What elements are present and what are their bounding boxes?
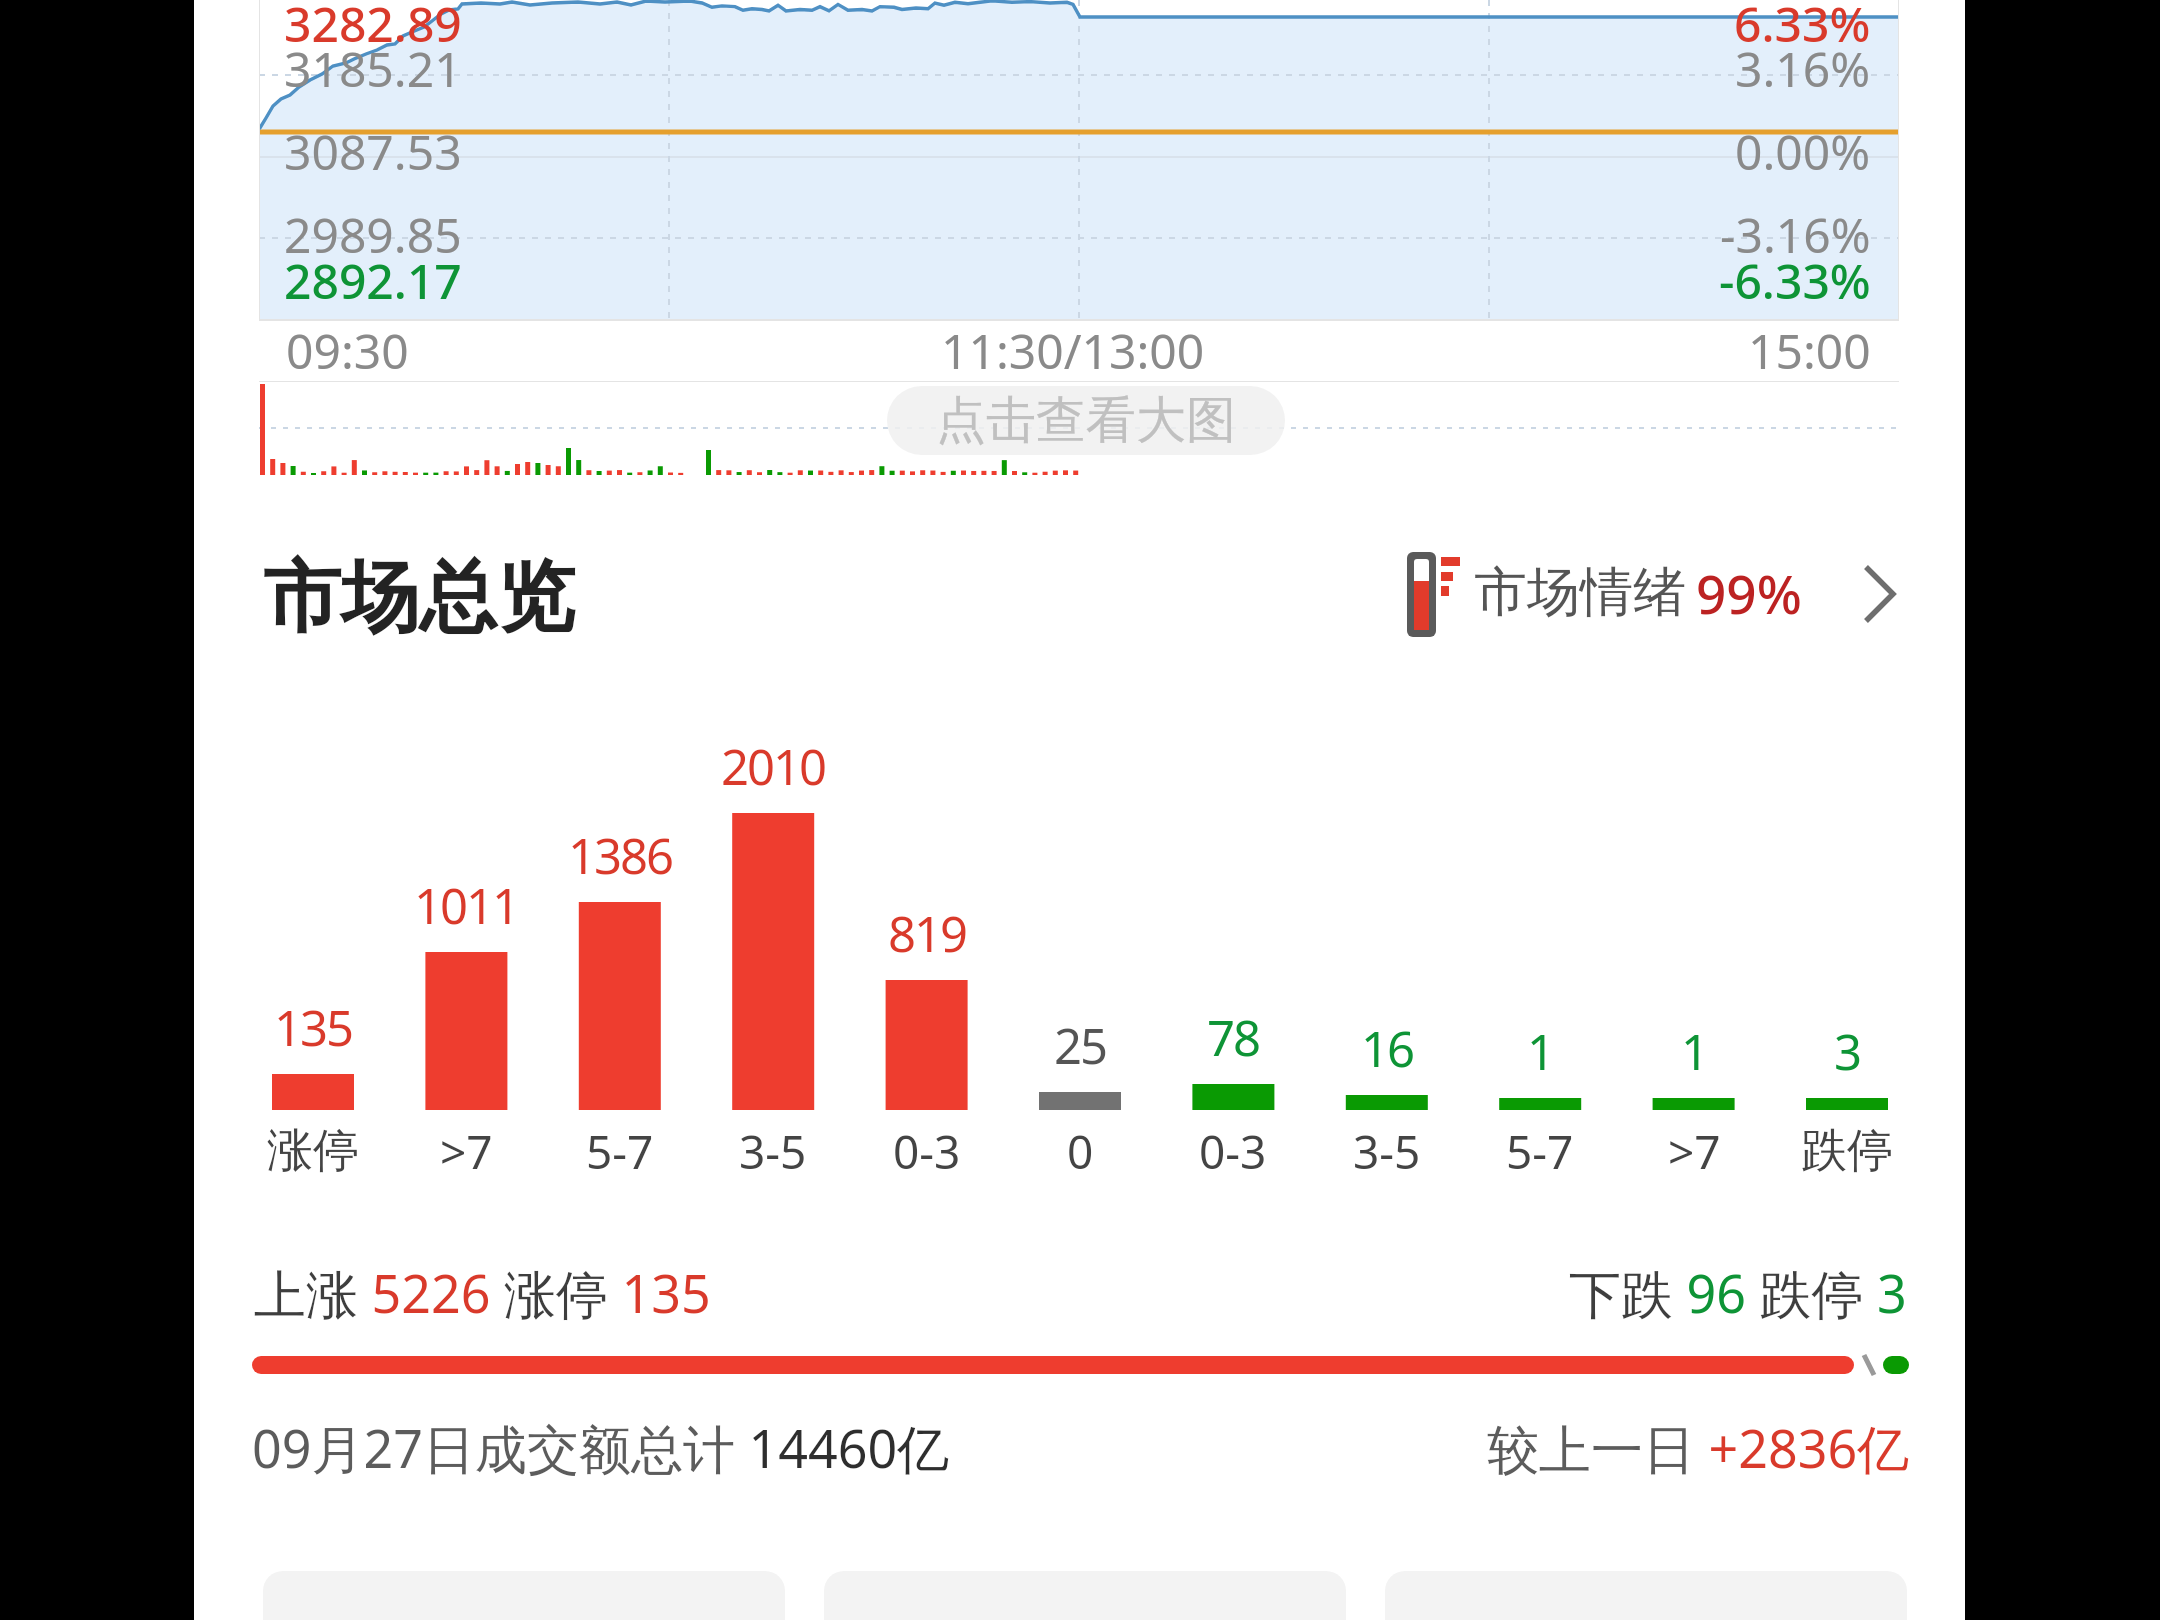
staticText: 3-5: [1353, 1120, 1421, 1183]
staticText: 2892.17: [284, 248, 462, 313]
staticText: 6.33%: [1734, 0, 1871, 56]
staticText: 1011: [414, 872, 519, 939]
staticText: 3.16%: [1735, 36, 1871, 101]
staticText: 819: [888, 900, 967, 967]
staticText: >7: [440, 1120, 493, 1183]
staticText: 99%: [1696, 557, 1802, 629]
staticText: 11:30/13:00: [941, 318, 1205, 383]
staticText: 0: [1067, 1120, 1094, 1183]
staticText: 较上一日 +2836亿: [1487, 1412, 1910, 1483]
staticText: 市场情绪: [1474, 559, 1686, 626]
staticText: 涨停: [267, 1122, 359, 1180]
staticText: -3.16%: [1720, 202, 1871, 267]
staticText: 25: [1054, 1012, 1107, 1079]
staticText: 135: [274, 994, 353, 1061]
staticText: 09月27日成交额总计 14460亿: [252, 1412, 950, 1483]
button[interactable]: 点击查看大图: [887, 386, 1285, 455]
staticText: 2989.85: [284, 202, 462, 267]
staticText: 3: [1834, 1018, 1861, 1085]
staticText: 09:30: [286, 318, 409, 383]
staticText: 3282.89: [284, 0, 462, 56]
staticText: 市场总览: [263, 549, 575, 647]
button[interactable]: 分时走势图: [259, 0, 1899, 476]
staticText: 下跌 96 跌停 3: [1569, 1257, 1907, 1328]
staticText: 上涨 5226 涨停 135: [254, 1257, 711, 1328]
staticText: 1: [1681, 1018, 1708, 1085]
staticText: 跌停: [1801, 1122, 1893, 1180]
staticText: 3185.21: [284, 36, 462, 101]
staticText: 0.00%: [1735, 119, 1871, 184]
staticText: 3-5: [739, 1120, 807, 1183]
staticText: 1: [1527, 1018, 1554, 1085]
staticText: 点击查看大图: [936, 389, 1236, 452]
staticText: 1386: [568, 822, 673, 889]
staticText: -6.33%: [1719, 248, 1871, 313]
staticText: 5-7: [1506, 1120, 1574, 1183]
button[interactable]: 市场情绪 99% 查看详情: [1400, 540, 1900, 648]
staticText: >7: [1668, 1120, 1721, 1183]
staticText: 3087.53: [284, 119, 462, 184]
staticText: 78: [1207, 1004, 1260, 1071]
staticText: 0-3: [893, 1120, 961, 1183]
staticText: 0-3: [1199, 1120, 1267, 1183]
staticText: 16: [1361, 1015, 1414, 1082]
staticText: 15:00: [1748, 318, 1871, 383]
staticText: 2010: [721, 733, 826, 800]
staticText: 5-7: [586, 1120, 654, 1183]
